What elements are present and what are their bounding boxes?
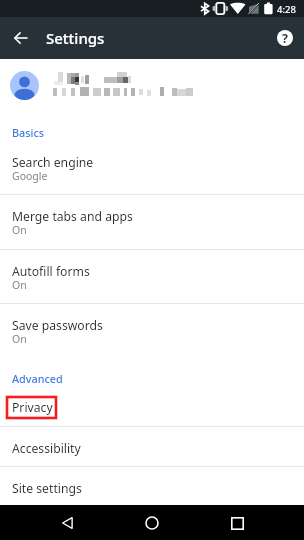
button[interactable]: Autofill forms	[0, 250, 304, 304]
button[interactable]: Navigate up	[8, 25, 34, 51]
staticText: On	[12, 223, 27, 237]
button[interactable]: Search engine	[0, 141, 304, 195]
staticText: Search engine	[12, 154, 94, 171]
staticText: Basics	[12, 125, 44, 140]
staticText: On	[12, 332, 27, 346]
staticText: Settings	[46, 28, 105, 48]
button[interactable]: Recent apps	[225, 511, 249, 535]
staticText: Merge tabs and apps	[12, 208, 133, 225]
button[interactable]: Save passwords	[0, 304, 304, 358]
button[interactable]: Privacy	[0, 387, 304, 427]
button[interactable]: Site settings	[0, 467, 304, 507]
staticText: Accessibility	[12, 440, 81, 457]
staticText: Google	[12, 169, 48, 183]
staticText: On	[12, 278, 27, 292]
button[interactable]: Accessibility	[0, 427, 304, 467]
staticText: 4:28	[277, 3, 296, 16]
button[interactable]: Home	[140, 511, 164, 535]
button[interactable]: Back	[55, 511, 79, 535]
button[interactable]: Help and feedback	[272, 25, 298, 51]
staticText: Advanced	[12, 371, 63, 386]
button[interactable]: Merge tabs and apps	[0, 195, 304, 250]
staticText: Site settings	[12, 480, 82, 497]
staticText: Save passwords	[12, 317, 103, 334]
staticText: Privacy	[12, 399, 53, 416]
staticText: ?	[282, 30, 288, 47]
staticText: Autofill forms	[12, 263, 90, 280]
button[interactable]	[0, 59, 304, 112]
